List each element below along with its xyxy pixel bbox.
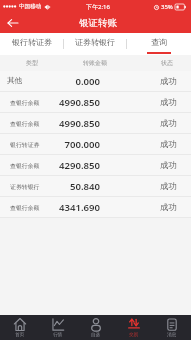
staticText: 成功	[160, 181, 177, 192]
staticText: 下午2:16	[86, 3, 110, 11]
button[interactable]: 自选	[77, 315, 115, 340]
staticText: 查银行余额	[10, 204, 40, 211]
staticText: 成功	[160, 76, 177, 87]
staticText: 首页	[15, 332, 25, 338]
staticText: 查银行余额	[10, 120, 40, 127]
staticText: 证券转银行	[10, 183, 40, 190]
button[interactable]: 消息	[153, 315, 191, 340]
staticText: 中国移动	[19, 3, 42, 10]
button[interactable]: 证券转银行	[0, 176, 191, 197]
staticText: 成功	[160, 160, 177, 171]
staticText: 查银行余额	[10, 99, 40, 106]
staticText: 50.840	[0, 180, 100, 193]
staticText: 4341.690	[0, 201, 100, 214]
staticText: 证券转银行	[75, 37, 115, 47]
button[interactable]: 银行转证券	[0, 33, 63, 55]
staticText: 查询	[151, 37, 167, 47]
staticText: 自选	[91, 332, 101, 338]
staticText: 银行转证券	[12, 37, 52, 47]
button[interactable]: 其他	[0, 71, 191, 92]
staticText: 转账金额	[83, 59, 107, 67]
button[interactable]: 返回	[0, 13, 24, 33]
button[interactable]: 首页	[0, 315, 39, 340]
staticText: 消息	[167, 332, 177, 338]
button[interactable]: 行情	[39, 315, 77, 340]
staticText: 类型	[26, 59, 38, 67]
staticText: 查银行余额	[10, 162, 40, 169]
staticText: 银行转证券	[10, 141, 40, 148]
staticText: 4990.850	[0, 96, 100, 109]
staticText: 行情	[53, 332, 63, 338]
staticText: 成功	[160, 118, 177, 129]
staticText: 成功	[160, 202, 177, 213]
button[interactable]: 查银行余额	[0, 197, 191, 218]
staticText: 0.000	[0, 75, 100, 88]
staticText: 成功	[160, 97, 177, 108]
button[interactable]: 查银行余额	[0, 113, 191, 134]
staticText: 35%	[161, 3, 173, 11]
staticText: 4290.850	[0, 159, 100, 172]
staticText: 状态	[161, 59, 173, 67]
staticText: 成功	[160, 139, 177, 150]
button[interactable]: 交易	[115, 315, 153, 340]
button[interactable]: 查银行余额	[0, 92, 191, 113]
button[interactable]: 银行转证券	[0, 134, 191, 155]
staticText: 4990.850	[0, 117, 100, 130]
button[interactable]: 查询	[127, 33, 191, 55]
button[interactable]: 证券转银行	[63, 33, 127, 55]
staticText: 其他	[7, 76, 23, 86]
button[interactable]: 查银行余额	[0, 155, 191, 176]
staticText: 交易	[129, 332, 139, 338]
staticText: 银证转账	[79, 17, 117, 29]
staticText: 700.000	[0, 138, 100, 151]
